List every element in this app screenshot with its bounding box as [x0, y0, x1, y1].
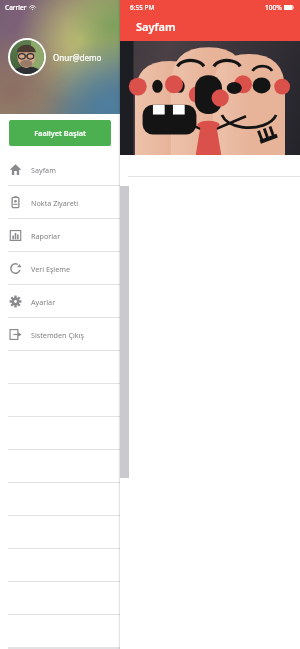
button[interactable]: Veri Eşleme — [0, 252, 120, 285]
staticText: Sayfam — [136, 19, 176, 34]
button[interactable] — [0, 483, 120, 516]
button[interactable]: Sistemden Çıkış — [0, 318, 120, 351]
button[interactable] — [0, 351, 120, 384]
staticText: Raporlar — [31, 231, 61, 241]
button[interactable] — [0, 516, 120, 549]
button[interactable] — [0, 582, 120, 615]
button[interactable]: Profile photo — [10, 40, 44, 74]
staticText: Sistemden Çıkış — [31, 330, 84, 340]
button[interactable]: Ayarlar — [0, 285, 120, 318]
button[interactable]: Sayfam — [0, 153, 120, 186]
button[interactable]: Raporlar — [0, 219, 120, 252]
staticText: 6:55 PM — [130, 3, 155, 12]
button[interactable] — [0, 417, 120, 450]
staticText: Veri Eşleme — [31, 264, 71, 274]
button[interactable]: Faaliyet Başlat — [9, 120, 111, 146]
button[interactable] — [0, 549, 120, 582]
staticText: 100% — [265, 3, 282, 12]
staticText: Faaliyet Başlat — [34, 128, 86, 138]
staticText: Carrier — [5, 3, 27, 12]
staticText: Onur@demo — [53, 52, 102, 63]
button[interactable] — [0, 615, 120, 648]
staticText: Ayarlar — [31, 297, 56, 307]
button[interactable] — [0, 648, 120, 649]
button[interactable] — [0, 450, 120, 483]
button[interactable] — [0, 384, 120, 417]
staticText: Sayfam — [31, 165, 56, 175]
button[interactable]: Nokta Ziyareti — [0, 186, 120, 219]
staticText: Nokta Ziyareti — [31, 198, 79, 208]
